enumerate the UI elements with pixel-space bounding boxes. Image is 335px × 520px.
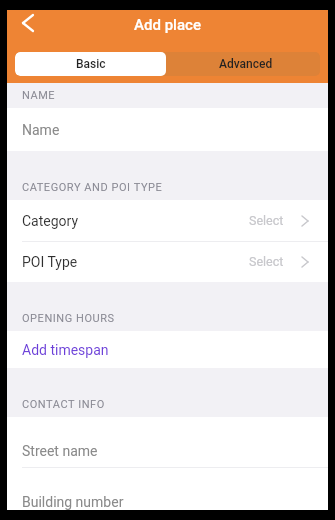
- staticText: POI Type: [22, 254, 78, 270]
- staticText: CONTACT INFO: [22, 398, 105, 411]
- staticText: Add timespan: [22, 342, 109, 358]
- staticText: NAME: [22, 89, 56, 102]
- button[interactable]: Street name: [7, 417, 328, 467]
- button[interactable]: Building number: [7, 468, 328, 510]
- staticText: CATEGORY AND POI TYPE: [22, 181, 163, 194]
- staticText: Category: [22, 213, 79, 229]
- staticText: Advanced: [219, 57, 273, 71]
- button[interactable]: Category: [7, 200, 328, 241]
- staticText: Street name: [22, 443, 98, 459]
- button[interactable]: Back: [12, 7, 44, 39]
- staticText: Select: [249, 213, 284, 228]
- staticText: Select: [249, 254, 284, 269]
- button[interactable]: Add timespan: [7, 331, 328, 368]
- button[interactable]: Basic: [15, 52, 166, 76]
- button[interactable]: Advanced: [166, 52, 320, 76]
- staticText: Building number: [22, 494, 124, 510]
- staticText: Add place: [134, 16, 201, 34]
- staticText: Basic: [76, 57, 106, 71]
- button[interactable]: POI Type: [7, 241, 328, 282]
- button[interactable]: Name: [7, 108, 328, 151]
- staticText: OPENING HOURS: [22, 312, 115, 325]
- staticText: Name: [22, 122, 60, 138]
